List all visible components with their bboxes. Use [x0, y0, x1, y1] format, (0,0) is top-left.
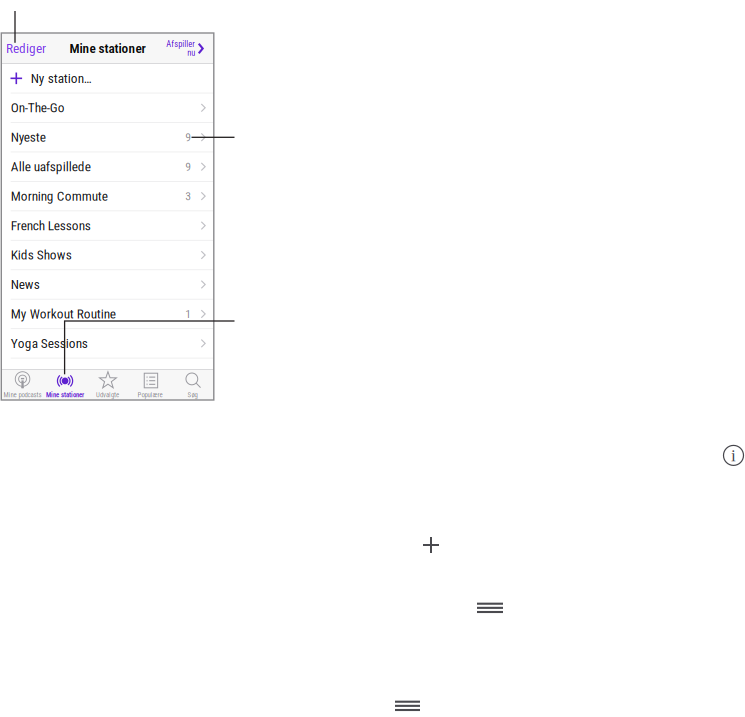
button[interactable]: Mine podcasts	[1, 369, 44, 400]
staticText: Udvalgte	[96, 391, 119, 399]
button[interactable]: Udvalgte	[86, 369, 129, 400]
button[interactable]: Rediger	[1, 34, 46, 63]
staticText: On-The-Go	[11, 100, 65, 116]
button[interactable]: My Workout Routine	[1, 300, 214, 329]
staticText: Afspiller	[166, 39, 195, 49]
staticText: Mine podcasts	[3, 391, 41, 399]
staticText: i	[731, 446, 736, 465]
staticText: Alle uafspillede	[11, 159, 91, 174]
button[interactable]: Morning Commute	[1, 182, 214, 211]
button[interactable]: French Lessons	[1, 211, 214, 241]
staticText: French Lessons	[11, 218, 91, 233]
button[interactable]: On-The-Go	[1, 93, 214, 123]
button[interactable]: Søg	[171, 369, 214, 400]
staticText: 9	[185, 160, 191, 174]
staticText: News	[11, 277, 40, 292]
button[interactable]: Mine stationer	[44, 369, 86, 400]
staticText: My Workout Routine	[11, 306, 116, 322]
staticText: Yoga Sessions	[11, 336, 88, 351]
staticText: Mine stationer	[46, 391, 84, 399]
staticText: 3	[185, 189, 191, 203]
staticText: Populære	[138, 391, 163, 399]
staticText: 9	[185, 130, 191, 144]
staticText: Søg	[188, 391, 198, 399]
button[interactable]: Kids Shows	[1, 241, 214, 270]
button[interactable]: Alle uafspillede	[1, 152, 214, 182]
button[interactable]: Nyeste	[1, 123, 214, 152]
staticText: Kids Shows	[11, 247, 72, 263]
button[interactable]: Afspiller	[166, 34, 214, 63]
button[interactable]: Yoga Sessions	[1, 329, 214, 358]
staticText: Ny station…	[31, 70, 92, 86]
staticText: Nyeste	[11, 129, 46, 145]
button[interactable]: Populære	[129, 369, 171, 400]
staticText: Rediger	[6, 41, 46, 56]
button[interactable]: Ny station…	[1, 64, 214, 93]
staticText: Morning Commute	[11, 188, 108, 204]
staticText: Mine stationer	[69, 41, 145, 56]
staticText: nu	[187, 48, 195, 58]
staticText: 1	[185, 307, 191, 321]
button[interactable]: News	[1, 270, 214, 299]
